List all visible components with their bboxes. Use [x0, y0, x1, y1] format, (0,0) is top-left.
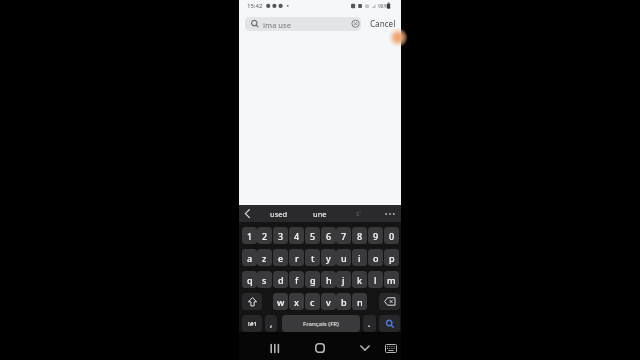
button[interactable]: 4 [289, 227, 304, 244]
staticText: 15:42 [247, 2, 263, 10]
button[interactable] [379, 293, 400, 310]
button[interactable]: f [289, 271, 304, 288]
staticText: h [326, 274, 332, 286]
staticText: 9 [373, 230, 379, 242]
staticText: f [295, 274, 299, 286]
button[interactable]: m [384, 271, 399, 288]
button[interactable]: , [265, 315, 277, 332]
button[interactable]: i [352, 249, 367, 266]
staticText: Cancel [370, 18, 396, 29]
button[interactable]: Cancel [367, 15, 399, 31]
staticText: m [387, 274, 396, 286]
button[interactable] [382, 339, 400, 357]
button[interactable]: 6 [321, 227, 336, 244]
button[interactable]: 7 [336, 227, 351, 244]
staticText: j [342, 274, 345, 286]
staticText: 5 [310, 230, 316, 242]
button[interactable]: d [273, 271, 288, 288]
staticText: b [341, 296, 347, 308]
staticText: x [294, 296, 299, 308]
staticText: z [262, 252, 267, 264]
button[interactable]: u [336, 249, 351, 266]
button[interactable]: !#1 [242, 315, 262, 332]
staticText: y [326, 252, 331, 264]
staticText: 0 [389, 230, 395, 242]
staticText: 1 [247, 230, 253, 242]
button[interactable] [379, 315, 400, 332]
staticText: une [313, 209, 327, 219]
button[interactable]: 1 [242, 227, 257, 244]
staticText: 4 [294, 230, 300, 242]
staticText: c [310, 296, 315, 308]
staticText: s [262, 274, 267, 286]
button[interactable]: p [384, 249, 399, 266]
staticText: e [278, 252, 284, 264]
button[interactable]: 8 [352, 227, 367, 244]
button[interactable] [381, 205, 399, 222]
staticText: 7 [341, 230, 347, 242]
staticText: ima use [263, 20, 292, 30]
button[interactable]: h [321, 271, 336, 288]
button[interactable]: l [368, 271, 383, 288]
staticText: r [295, 252, 299, 264]
staticText: q [247, 274, 253, 286]
staticText: 8 [357, 230, 363, 242]
button[interactable] [242, 293, 262, 310]
button[interactable]: y [321, 249, 336, 266]
button[interactable]: j [336, 271, 351, 288]
staticText: u [341, 252, 347, 264]
button[interactable]: z [257, 249, 272, 266]
button[interactable]: used [263, 205, 295, 222]
staticText: a [247, 252, 253, 264]
button[interactable]: . [363, 315, 376, 332]
staticText: n [357, 296, 363, 308]
button[interactable]: e [273, 249, 288, 266]
button[interactable]: x [289, 293, 304, 310]
button[interactable]: 2 [257, 227, 272, 244]
button[interactable] [308, 336, 332, 360]
button[interactable]: s [257, 271, 272, 288]
button[interactable]: t [305, 249, 320, 266]
button[interactable] [353, 336, 377, 360]
button[interactable]: 9 [368, 227, 383, 244]
button[interactable]: 0 [384, 227, 399, 244]
button[interactable]: b [336, 293, 351, 310]
staticText: 6 [326, 230, 332, 242]
staticText: o [373, 252, 379, 264]
staticText: k [357, 274, 363, 286]
button[interactable]: 3 [273, 227, 288, 244]
button[interactable] [241, 205, 255, 222]
button[interactable]: 5 [305, 227, 320, 244]
staticText: g [310, 274, 316, 286]
staticText: l [374, 274, 377, 286]
staticText: !#1 [248, 320, 257, 328]
staticText: 2 [262, 230, 268, 242]
button[interactable]: une [305, 205, 335, 222]
button[interactable]: Français (FR) [282, 315, 360, 332]
staticText: p [389, 252, 395, 264]
staticText: i [358, 252, 361, 264]
staticText: Français (FR) [303, 320, 339, 328]
staticText: 98% [378, 3, 388, 10]
button[interactable]: n [352, 293, 367, 310]
button[interactable]: c [305, 293, 320, 310]
button[interactable]: v [321, 293, 336, 310]
button[interactable]: k [352, 271, 367, 288]
staticText: . [368, 318, 371, 329]
button[interactable]: w [273, 293, 288, 310]
button[interactable]: a [242, 249, 257, 266]
button[interactable]: q [242, 271, 257, 288]
button[interactable]: o [368, 249, 383, 266]
staticText: used [270, 209, 288, 219]
staticText: v [326, 296, 331, 308]
button[interactable]: ima use [245, 17, 361, 31]
staticText: s' [356, 209, 361, 219]
button[interactable]: s' [349, 205, 367, 222]
button[interactable] [263, 336, 287, 360]
staticText: , [270, 318, 273, 329]
staticText: 3 [278, 230, 284, 242]
staticText: w [277, 296, 285, 308]
button[interactable]: g [305, 271, 320, 288]
staticText: d [278, 274, 284, 286]
button[interactable]: r [289, 249, 304, 266]
